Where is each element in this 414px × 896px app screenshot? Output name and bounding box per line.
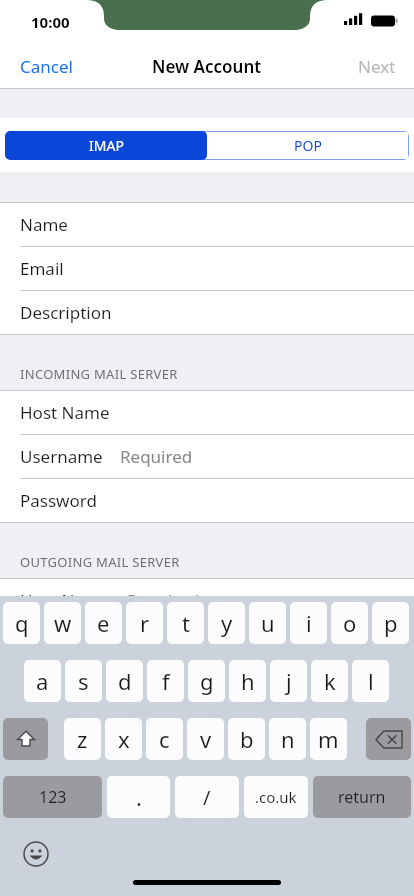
- staticText: t: [182, 608, 190, 638]
- button[interactable]: a: [24, 660, 61, 702]
- button[interactable]: return: [313, 776, 411, 818]
- staticText: Next: [358, 55, 396, 78]
- button[interactable]: Username: [0, 434, 414, 478]
- staticText: o: [343, 608, 357, 638]
- staticText: r: [140, 608, 150, 638]
- button[interactable]: 123: [3, 776, 102, 818]
- button[interactable]: Cancel: [20, 44, 73, 88]
- staticText: y: [221, 608, 233, 638]
- staticText: s: [78, 666, 89, 696]
- button[interactable]: p: [372, 602, 409, 644]
- button[interactable]: i: [290, 602, 327, 644]
- staticText: g: [200, 666, 214, 696]
- button[interactable]: Description: [0, 290, 414, 334]
- button[interactable]: z: [64, 718, 101, 760]
- staticText: n: [281, 724, 295, 754]
- staticText: z: [77, 724, 88, 754]
- button[interactable]: c: [146, 718, 183, 760]
- staticText: l: [368, 666, 374, 696]
- button[interactable]: Name: [0, 202, 414, 246]
- staticText: u: [261, 608, 275, 638]
- button[interactable]: e: [85, 602, 122, 644]
- button[interactable]: Host Name: [0, 390, 414, 434]
- staticText: .: [136, 782, 142, 812]
- button[interactable]: t: [167, 602, 204, 644]
- button[interactable]: Emoji: [20, 838, 52, 870]
- staticText: OUTGOING MAIL SERVER: [20, 553, 180, 571]
- staticText: Required: [120, 445, 193, 468]
- staticText: INCOMING MAIL SERVER: [20, 365, 178, 383]
- staticText: Required: [127, 589, 200, 612]
- staticText: .co.uk: [255, 787, 297, 807]
- button[interactable]: d: [106, 660, 143, 702]
- staticText: b: [240, 724, 254, 754]
- staticText: e: [97, 608, 110, 638]
- button[interactable]: Email: [0, 246, 414, 290]
- button[interactable]: Host Name: [0, 578, 414, 622]
- staticText: New Account: [152, 55, 262, 78]
- staticText: m: [318, 724, 339, 754]
- staticText: Name: [20, 213, 68, 236]
- staticText: a: [36, 666, 49, 696]
- button[interactable]: x: [105, 718, 142, 760]
- staticText: v: [200, 724, 212, 754]
- button[interactable]: j: [270, 660, 307, 702]
- button[interactable]: s: [65, 660, 102, 702]
- button[interactable]: h: [229, 660, 266, 702]
- staticText: q: [15, 608, 29, 638]
- button[interactable]: IMAP: [5, 131, 207, 160]
- staticText: i: [306, 608, 312, 638]
- button[interactable]: l: [352, 660, 389, 702]
- button[interactable]: Next: [358, 44, 396, 88]
- button[interactable]: n: [269, 718, 306, 760]
- button[interactable]: w: [44, 602, 81, 644]
- button[interactable]: .: [107, 776, 170, 818]
- staticText: IMAP: [89, 136, 124, 155]
- staticText: Description: [20, 301, 112, 324]
- button[interactable]: /: [175, 776, 239, 818]
- staticText: x: [118, 724, 130, 754]
- button[interactable]: .co.uk: [244, 776, 308, 818]
- button[interactable]: f: [147, 660, 184, 702]
- staticText: Username: [20, 445, 103, 468]
- staticText: 123: [39, 786, 67, 808]
- staticText: k: [324, 666, 336, 696]
- staticText: 10:00: [31, 12, 70, 32]
- button[interactable]: Shift: [3, 718, 48, 760]
- button[interactable]: m: [310, 718, 347, 760]
- button[interactable]: Backspace: [366, 718, 411, 760]
- staticText: j: [286, 666, 292, 696]
- staticText: d: [118, 666, 132, 696]
- button[interactable]: Password: [0, 478, 414, 522]
- staticText: POP: [294, 136, 322, 155]
- button[interactable]: g: [188, 660, 225, 702]
- staticText: Email: [20, 257, 64, 280]
- staticText: p: [384, 608, 398, 638]
- button[interactable]: y: [208, 602, 245, 644]
- button[interactable]: o: [331, 602, 368, 644]
- button[interactable]: b: [228, 718, 265, 760]
- button[interactable]: r: [126, 602, 163, 644]
- staticText: c: [159, 724, 170, 754]
- staticText: f: [162, 666, 170, 696]
- button[interactable]: v: [187, 718, 224, 760]
- staticText: return: [338, 786, 386, 808]
- staticText: w: [54, 608, 72, 638]
- staticText: h: [241, 666, 255, 696]
- staticText: Cancel: [20, 55, 73, 78]
- button[interactable]: q: [3, 602, 40, 644]
- button[interactable]: POP: [207, 131, 409, 160]
- staticText: Host Name: [20, 401, 110, 424]
- staticText: /: [203, 784, 211, 811]
- button[interactable]: k: [311, 660, 348, 702]
- staticText: Password: [20, 489, 97, 512]
- staticText: Host Name: [20, 589, 110, 612]
- button[interactable]: u: [249, 602, 286, 644]
